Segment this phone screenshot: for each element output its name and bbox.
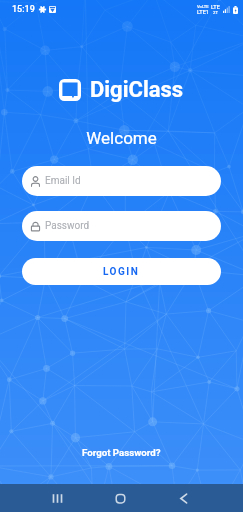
staticText: LTE1 [197,9,209,15]
staticText: Email Id [45,175,81,187]
button[interactable]: Email Id [22,166,221,196]
button[interactable]: Home [100,484,140,512]
button[interactable]: LOGIN [22,258,221,285]
staticText: Forgot Password? [82,447,161,458]
staticText: LTE [211,4,220,10]
staticText: 15:19 [12,4,35,15]
staticText: LOGIN [103,266,140,278]
staticText: VoLTE [197,4,209,9]
button[interactable]: Recent apps [37,484,77,512]
staticText: Password [45,220,90,232]
button[interactable]: Forgot Password? [74,443,169,462]
staticText: DigiClass [90,77,184,103]
button[interactable]: Password [22,211,221,241]
staticText: 2T [213,10,218,15]
button[interactable]: Back [163,484,203,512]
staticText: Welcome [0,128,243,148]
